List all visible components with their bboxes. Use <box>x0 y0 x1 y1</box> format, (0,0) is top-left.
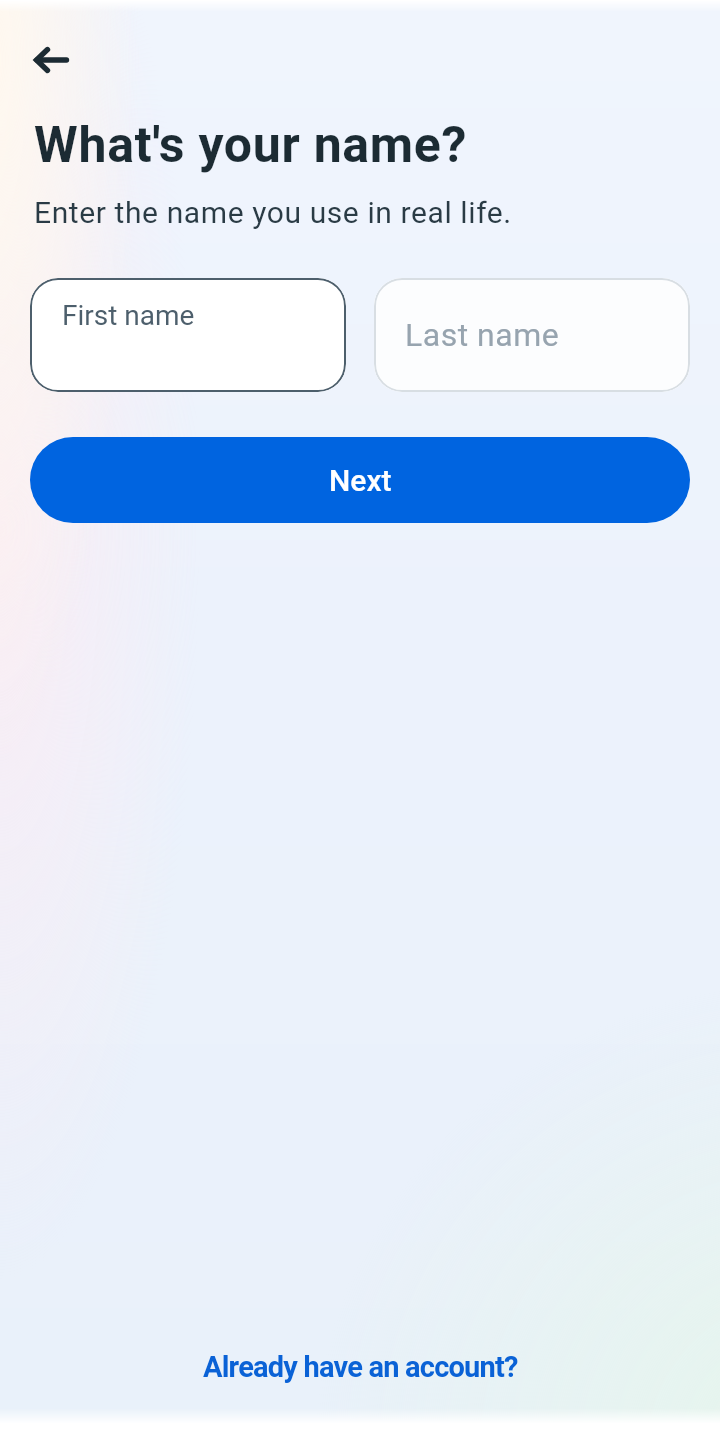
staticText: Last name <box>405 316 560 354</box>
staticText: Next <box>329 463 392 498</box>
button[interactable] <box>30 38 74 82</box>
button[interactable]: Last name <box>374 278 690 392</box>
button[interactable]: Next <box>30 437 690 523</box>
button[interactable]: First name <box>30 278 346 392</box>
staticText: What's your name? <box>34 116 468 175</box>
staticText: Already have an account? <box>203 1350 518 1384</box>
staticText: First name <box>62 299 195 332</box>
button[interactable]: Already have an account? <box>203 1350 518 1384</box>
staticText: Enter the name you use in real life. <box>34 195 512 230</box>
